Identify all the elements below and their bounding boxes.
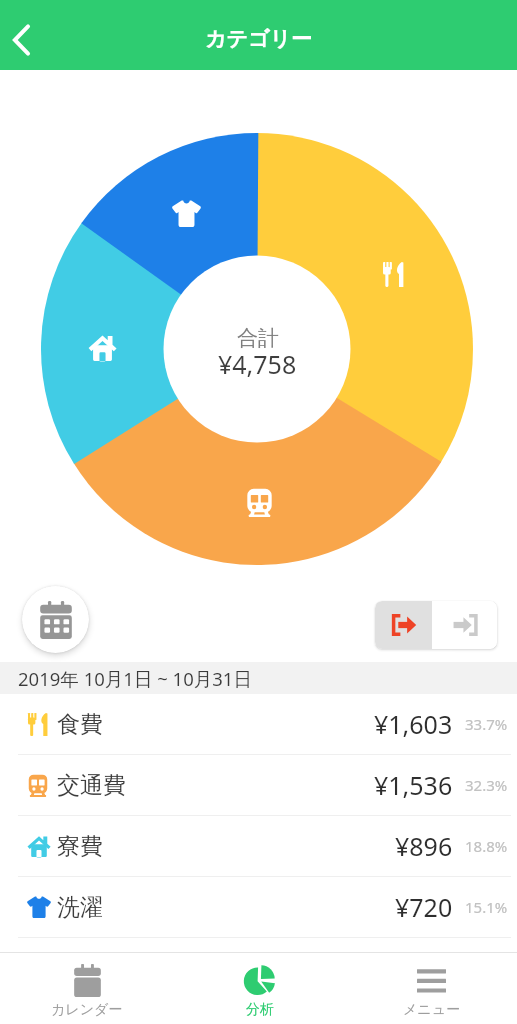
button[interactable]: 食費: [0, 694, 517, 754]
button[interactable]: メニュー: [345, 953, 517, 1024]
button[interactable]: Expenses: [375, 601, 432, 649]
button[interactable]: 分析: [173, 953, 345, 1024]
staticText: ¥720: [395, 890, 453, 924]
staticText: 18.8%: [465, 836, 508, 856]
staticText: ¥1,603: [374, 707, 453, 741]
staticText: ¥4,758: [218, 347, 297, 381]
staticText: 32.3%: [465, 775, 508, 795]
button[interactable]: Select date range: [22, 586, 89, 653]
staticText: 寮費: [57, 832, 103, 861]
staticText: ¥896: [395, 829, 453, 863]
staticText: カテゴリー: [205, 26, 312, 52]
button[interactable]: 洗濯: [0, 877, 517, 937]
staticText: ¥1,536: [374, 768, 453, 802]
staticText: 2019年 10月1日 ~ 10月31日: [18, 666, 252, 691]
staticText: 合計: [237, 325, 279, 351]
button[interactable]: 寮費: [0, 816, 517, 876]
staticText: 交通費: [57, 771, 126, 800]
staticText: カレンダー: [51, 1001, 123, 1019]
staticText: 洗濯: [57, 893, 103, 922]
staticText: メニュー: [403, 1001, 460, 1019]
button[interactable]: カレンダー: [0, 953, 173, 1024]
button[interactable]: Back: [0, 15, 46, 65]
staticText: 分析: [246, 1001, 274, 1019]
staticText: 食費: [57, 710, 103, 739]
staticText: 33.7%: [465, 714, 508, 734]
button[interactable]: 交通費: [0, 755, 517, 815]
staticText: 15.1%: [465, 897, 508, 917]
button[interactable]: Income: [432, 601, 497, 649]
